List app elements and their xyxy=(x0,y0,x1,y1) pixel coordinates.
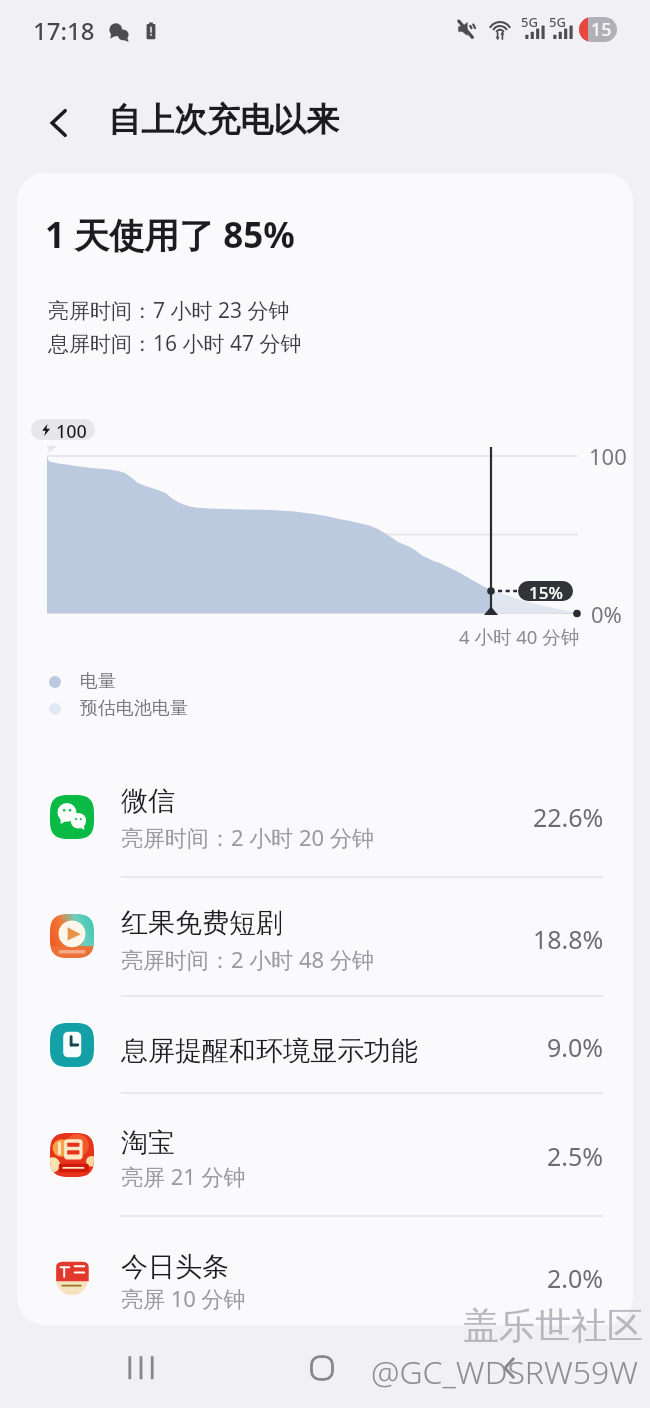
staticText: 电量 xyxy=(80,670,116,693)
staticText: 15 xyxy=(591,17,612,42)
staticText: 0% xyxy=(591,599,622,629)
staticText: 100 xyxy=(589,441,627,471)
staticText: 息屏提醒和环境显示功能 xyxy=(121,1034,418,1068)
staticText: 17:18 xyxy=(33,14,95,47)
staticText: 亮屏时间：7 小时 23 分钟 xyxy=(48,296,290,325)
button[interactable]: Back xyxy=(480,1338,540,1398)
staticText: 9.0% xyxy=(547,1030,604,1064)
staticText: 淘宝 xyxy=(121,1126,175,1160)
button[interactable] xyxy=(17,995,633,1092)
button[interactable]: Recent apps xyxy=(111,1338,171,1398)
staticText: 亮屏时间：2 小时 48 分钟 xyxy=(121,944,374,974)
staticText: 预估电池电量 xyxy=(80,697,188,720)
staticText: 自上次充电以来 xyxy=(108,99,339,141)
staticText: 亮屏时间：2 小时 20 分钟 xyxy=(121,822,374,852)
staticText: @GC_WDSRW59W xyxy=(371,1350,639,1394)
staticText: 亮屏 10 分钟 xyxy=(121,1283,246,1313)
staticText: 22.6% xyxy=(533,800,604,834)
staticText: 2.5% xyxy=(547,1139,604,1173)
button[interactable] xyxy=(17,1215,633,1327)
staticText: 5G xyxy=(549,13,566,31)
button[interactable] xyxy=(17,760,633,876)
staticText: 4 小时 40 分钟 xyxy=(459,624,580,649)
staticText: 2.0% xyxy=(547,1261,604,1295)
staticText: 今日头条 xyxy=(121,1250,229,1284)
staticText: 5G xyxy=(521,13,538,31)
staticText: 盖乐世社区 xyxy=(463,1303,643,1348)
staticText: 微信 xyxy=(121,784,175,818)
staticText: 1 天使用了 85% xyxy=(45,211,295,259)
button[interactable] xyxy=(17,1092,633,1215)
button[interactable]: Back xyxy=(34,98,84,148)
staticText: 息屏时间：16 小时 47 分钟 xyxy=(48,329,302,358)
staticText: 红果免费短剧 xyxy=(121,906,283,940)
staticText: 亮屏 21 分钟 xyxy=(121,1161,246,1191)
button[interactable]: Home xyxy=(292,1338,352,1398)
button[interactable] xyxy=(17,876,633,995)
staticText: 100 xyxy=(56,419,87,440)
staticText: 18.8% xyxy=(533,922,604,956)
staticText: 15% xyxy=(529,581,563,601)
